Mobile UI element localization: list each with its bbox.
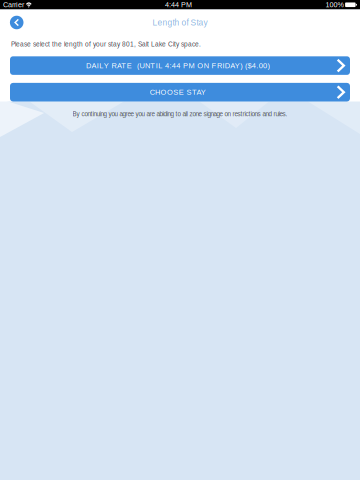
staticText: By continuing you agree you are abiding … — [72, 110, 287, 117]
staticText: 4:44 PM — [165, 1, 192, 9]
staticText: CHOOSE STAY — [150, 88, 206, 96]
staticText: Length of Stay — [152, 18, 207, 27]
button[interactable]: CHOOSE STAY — [10, 83, 350, 101]
staticText: DAILY RATE (UNTIL 4:44 PM ON FRIDAY) ($4… — [86, 61, 269, 70]
staticText: Please select the length of your stay 80… — [11, 40, 201, 48]
button[interactable]: DAILY RATE (UNTIL 4:44 PM ON FRIDAY) ($4… — [10, 56, 350, 75]
staticText: Carrier — [3, 1, 24, 9]
staticText: 100% — [325, 1, 343, 9]
button[interactable]: Back — [6, 11, 28, 33]
